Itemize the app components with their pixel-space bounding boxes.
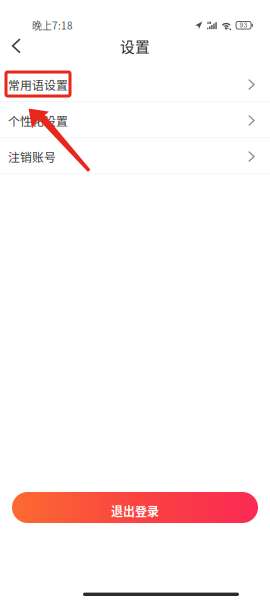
- button[interactable]: 常用语设置: [0, 66, 270, 102]
- button[interactable]: 注销账号: [0, 138, 270, 174]
- staticText: 常用语设置: [8, 76, 68, 93]
- button[interactable]: 退出登录: [12, 492, 258, 523]
- button[interactable]: 个性化设置: [0, 102, 270, 138]
- staticText: 个性化设置: [8, 112, 68, 129]
- staticText: 退出登录: [111, 502, 159, 520]
- staticText: 注销账号: [8, 148, 56, 165]
- staticText: 晚上7:18: [32, 18, 73, 32]
- button[interactable]: Back: [0, 32, 33, 60]
- staticText: 设置: [120, 35, 150, 57]
- staticText: 93: [240, 21, 248, 29]
